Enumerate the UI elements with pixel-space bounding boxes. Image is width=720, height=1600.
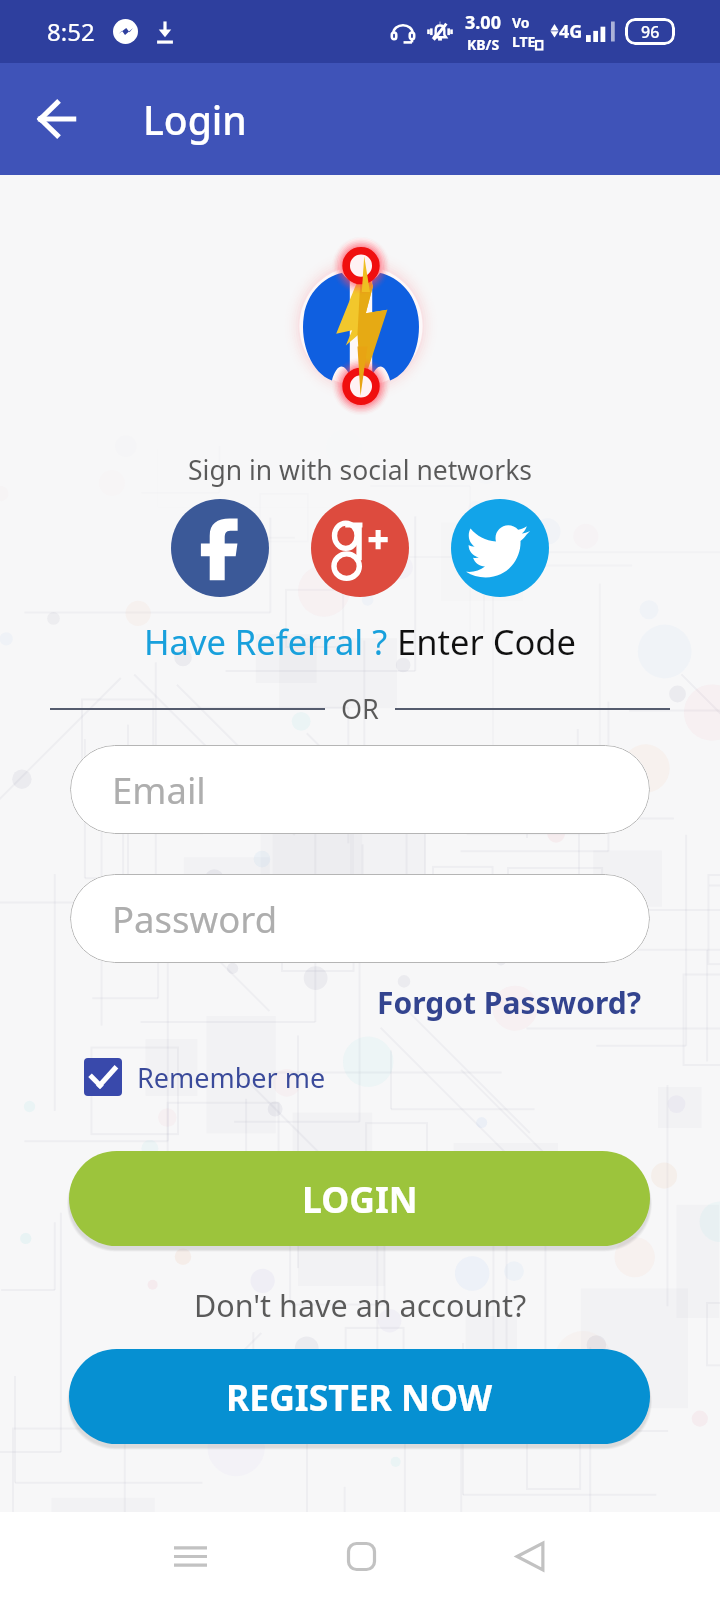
button[interactable]: Password (70, 874, 650, 963)
staticText: 8:52 (47, 15, 95, 48)
button[interactable]: Back (485, 1512, 575, 1600)
staticText: LOGIN (302, 1175, 418, 1223)
button[interactable]: Email (70, 745, 650, 834)
button[interactable]: REGISTER NOW (69, 1349, 650, 1444)
staticText: LTE (512, 32, 536, 51)
button[interactable]: Home (316, 1512, 406, 1600)
staticText: Enter Code (397, 618, 576, 665)
staticText: 96 (641, 21, 660, 43)
button[interactable]: Forgot Password? (377, 982, 642, 1023)
staticText: Password (112, 894, 278, 944)
staticText: Sign in with social networks (188, 452, 532, 488)
staticText: Have Referral ? (144, 618, 397, 665)
staticText: 3.00 (465, 10, 501, 35)
button[interactable]: Remember me (84, 1058, 326, 1096)
staticText: KB/S (467, 35, 500, 54)
button[interactable]: Sign in with Google (311, 499, 409, 597)
button[interactable]: Back (0, 63, 113, 175)
staticText: Remember me (137, 1059, 326, 1096)
staticText: Login (143, 93, 247, 146)
button[interactable]: Have Referral ? (144, 618, 576, 665)
staticText: Email (112, 765, 206, 815)
button[interactable]: Sign in with Facebook (171, 499, 269, 597)
staticText: Vo (512, 13, 530, 32)
staticText: 4G (559, 19, 583, 44)
button[interactable]: Recent apps (145, 1512, 235, 1600)
staticText: Don't have an account? (194, 1284, 527, 1326)
staticText: OR (341, 690, 379, 727)
button[interactable]: LOGIN (69, 1151, 650, 1246)
staticText: REGISTER NOW (226, 1373, 493, 1421)
button[interactable]: Sign in with Twitter (451, 499, 549, 597)
